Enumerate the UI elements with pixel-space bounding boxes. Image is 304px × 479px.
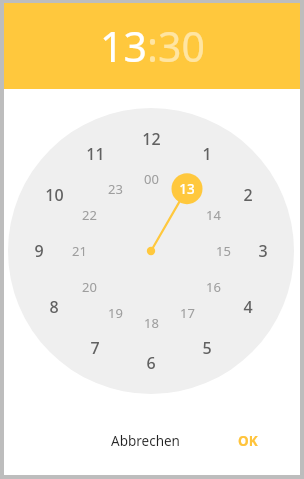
staticText: 5 — [202, 337, 212, 359]
staticText: 21 — [72, 242, 87, 260]
staticText: 13 — [179, 180, 195, 198]
staticText: :30 — [147, 18, 205, 74]
button[interactable]: :30 — [147, 18, 205, 74]
button[interactable]: 11 — [80, 139, 110, 169]
button[interactable]: 1 — [192, 139, 222, 169]
button[interactable]: 10 — [39, 180, 69, 210]
staticText: 00 — [144, 170, 159, 188]
staticText: 17 — [180, 304, 195, 322]
button[interactable]: 15 — [209, 237, 237, 265]
button[interactable]: 14 — [199, 201, 227, 229]
staticText: Abbrechen — [111, 432, 180, 450]
staticText: 2 — [243, 184, 253, 206]
button[interactable]: 8 — [39, 292, 69, 322]
staticText: 3 — [258, 240, 268, 262]
button[interactable]: OK — [230, 429, 266, 453]
staticText: 8 — [49, 296, 59, 318]
staticText: 12 — [142, 128, 161, 150]
staticText: 6 — [146, 352, 156, 374]
button[interactable]: 12 — [136, 124, 166, 154]
button[interactable]: 13 — [100, 18, 147, 74]
button[interactable]: 9 — [24, 236, 54, 266]
button[interactable]: 00 — [137, 165, 165, 193]
button[interactable]: 18 — [137, 309, 165, 337]
button[interactable]: 22 — [75, 201, 103, 229]
staticText: 15 — [216, 242, 231, 260]
staticText: 20 — [82, 278, 97, 296]
button[interactable]: 3 — [248, 236, 278, 266]
staticText: 14 — [206, 206, 221, 224]
staticText: 4 — [243, 296, 253, 318]
staticText: 19 — [108, 304, 123, 322]
staticText: 10 — [45, 184, 64, 206]
button[interactable]: 19 — [101, 299, 129, 327]
staticText: 18 — [144, 314, 159, 332]
button[interactable]: 17 — [173, 299, 201, 327]
button[interactable]: 2 — [233, 180, 263, 210]
staticText: 11 — [86, 143, 105, 165]
staticText: 13 — [100, 18, 147, 74]
staticText: 23 — [108, 180, 123, 198]
button[interactable]: 4 — [233, 292, 263, 322]
button[interactable]: 5 — [192, 333, 222, 363]
button[interactable]: 13 — [173, 175, 201, 203]
staticText: 9 — [34, 240, 44, 262]
staticText: 7 — [90, 337, 100, 359]
button[interactable]: 21 — [65, 237, 93, 265]
button[interactable]: 16 — [199, 273, 227, 301]
button[interactable]: 6 — [136, 348, 166, 378]
button[interactable]: 23 — [101, 175, 129, 203]
staticText: OK — [238, 432, 258, 450]
staticText: 16 — [206, 278, 221, 296]
button[interactable]: 7 — [80, 333, 110, 363]
staticText: 22 — [82, 206, 97, 224]
staticText: 1 — [202, 143, 212, 165]
button[interactable]: Abbrechen — [103, 429, 188, 453]
button[interactable]: 20 — [75, 273, 103, 301]
